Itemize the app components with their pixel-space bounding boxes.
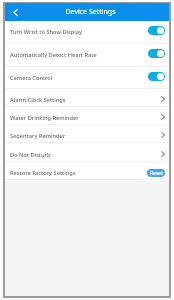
staticText: Turn Wrist to Show Display xyxy=(10,28,83,36)
button[interactable]: Water Drinking Reminder xyxy=(5,107,169,125)
button[interactable]: Alarm Clock Settings xyxy=(5,89,169,107)
button[interactable]: Toggle Automatically Detect Heart Rate xyxy=(148,49,165,58)
other: Open xyxy=(161,151,165,157)
staticText: Water Drinking Reminder xyxy=(10,114,79,122)
staticText: Automatically Detect Heart Rate xyxy=(10,51,97,59)
button[interactable]: Toggle Turn Wrist to Show Display xyxy=(148,26,165,35)
button[interactable]: Reset xyxy=(147,169,165,177)
staticText: Camera Control xyxy=(10,74,53,82)
button[interactable]: Do Not Disturb xyxy=(5,144,169,162)
button[interactable]: Camera Control xyxy=(5,67,169,89)
staticText: Device Settings xyxy=(65,7,116,17)
staticText: Restore Factory Settings xyxy=(10,169,76,177)
staticText: Do Not Disturb xyxy=(10,151,51,159)
other: Open xyxy=(161,114,165,120)
other: Open xyxy=(161,96,165,102)
button[interactable]: Toggle Camera Control xyxy=(148,72,165,81)
button[interactable]: Automatically Detect Heart Rate xyxy=(5,44,169,67)
button[interactable]: Restore Factory Settings xyxy=(5,162,169,180)
other: Open xyxy=(161,132,165,138)
button[interactable]: Back xyxy=(9,6,22,19)
button[interactable]: Turn Wrist to Show Display xyxy=(5,21,169,44)
staticText: Alarm Clock Settings xyxy=(10,96,66,104)
staticText: Reset xyxy=(150,170,163,177)
button[interactable]: Sedentary Reminder xyxy=(5,125,169,143)
staticText: Sedentary Reminder xyxy=(10,132,66,140)
